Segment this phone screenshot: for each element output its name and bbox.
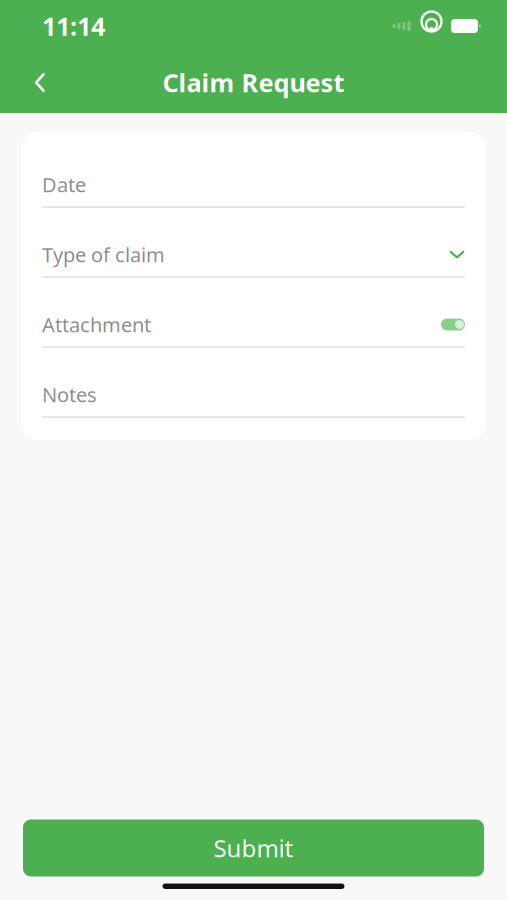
staticText: Submit [213, 832, 293, 864]
button[interactable]: Submit [23, 819, 484, 876]
staticText: Attachment [42, 311, 151, 338]
staticText: Notes [42, 381, 97, 408]
button[interactable]: Type of claim [21, 220, 486, 290]
button[interactable]: Back [18, 60, 62, 104]
staticText: Type of claim [42, 241, 165, 268]
button[interactable]: Date [21, 150, 486, 220]
staticText: Date [42, 171, 86, 198]
staticText: 11:14 [42, 9, 105, 43]
button[interactable]: Notes [21, 360, 486, 430]
staticText: Claim Request [162, 66, 344, 99]
button[interactable]: Attachment [21, 290, 486, 360]
